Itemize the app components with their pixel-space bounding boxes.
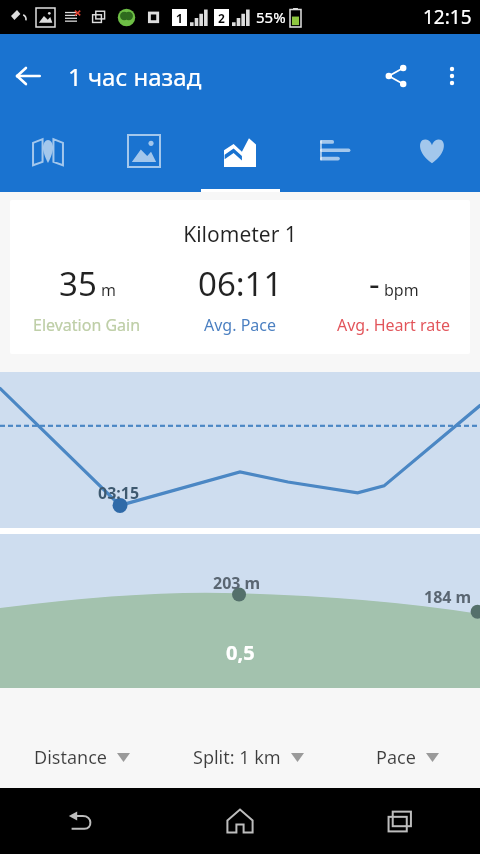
staticText: Avg. Pace <box>204 314 277 336</box>
button[interactable]: Photos <box>96 118 192 192</box>
staticText: 12:15 <box>423 4 472 30</box>
staticText: 184 m <box>424 586 472 608</box>
staticText: Kilometer 1 <box>10 220 470 249</box>
button[interactable]: Recent apps <box>320 788 480 854</box>
staticText: Split: 1 km <box>193 745 281 770</box>
staticText: Elevation Gain <box>33 314 141 336</box>
button[interactable]: More options <box>424 48 480 104</box>
staticText: 203 m <box>213 572 261 594</box>
button[interactable]: Share <box>368 48 424 104</box>
staticText: 1 час назад <box>68 60 202 93</box>
staticText: bpm <box>384 279 419 301</box>
staticText: 2 <box>218 10 225 26</box>
button[interactable]: Split: 1 km <box>163 745 334 770</box>
button[interactable]: 03:15 <box>0 372 480 528</box>
button[interactable]: Heart rate <box>384 118 480 192</box>
button[interactable]: Map <box>0 118 96 192</box>
staticText: - <box>369 261 380 306</box>
staticText: Distance <box>34 745 107 770</box>
staticText: 03:15 <box>98 482 140 504</box>
staticText: 0,5 <box>226 639 255 666</box>
button[interactable]: Charts <box>192 118 288 192</box>
button[interactable]: Back <box>0 48 56 104</box>
staticText: 06:11 <box>198 261 283 306</box>
button[interactable]: 203 m <box>0 534 480 688</box>
staticText: 55% <box>256 7 286 27</box>
button[interactable]: Distance <box>0 745 163 770</box>
button[interactable]: Kilometer 1 <box>10 200 470 354</box>
staticText: 35 <box>59 261 97 306</box>
staticText: 1 <box>176 10 183 26</box>
button[interactable]: Back <box>0 788 160 854</box>
button[interactable]: Pace <box>334 745 480 770</box>
staticText: Pace <box>376 745 416 770</box>
button[interactable]: Splits <box>288 118 384 192</box>
staticText: Avg. Heart rate <box>337 314 451 336</box>
staticText: m <box>101 279 116 301</box>
button[interactable]: Home <box>160 788 320 854</box>
